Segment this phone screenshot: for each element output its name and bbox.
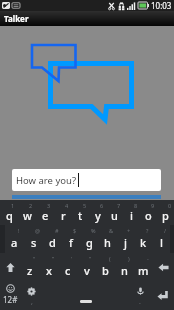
staticText: . [139, 297, 141, 307]
staticText: 12# [3, 294, 18, 305]
staticText: z [27, 263, 33, 278]
staticText: a [11, 235, 18, 250]
staticText: m [138, 263, 149, 278]
staticText: 7 [117, 202, 121, 209]
button[interactable]: ( [96, 253, 115, 281]
button[interactable]: 1 [0, 200, 18, 225]
staticText: 0 [168, 202, 172, 209]
staticText: b [102, 263, 109, 278]
button[interactable]: $ [62, 225, 80, 253]
staticText: , [31, 297, 33, 307]
button[interactable]: Emoji and symbols [0, 281, 21, 310]
button[interactable]: % [80, 225, 98, 253]
button[interactable]: 5 [72, 200, 89, 225]
staticText: & [109, 227, 114, 234]
staticText: v [84, 263, 90, 278]
staticText: n [121, 263, 128, 278]
button[interactable]: # [43, 225, 62, 253]
button[interactable]: ? [134, 225, 152, 253]
button[interactable]: 4 [54, 200, 72, 225]
button[interactable]: 9 [140, 200, 157, 225]
staticText: + [127, 227, 131, 234]
button[interactable]: “ [20, 253, 39, 281]
staticText: 8 [134, 202, 138, 209]
staticText: 3 [47, 202, 51, 209]
staticText: h [104, 235, 111, 250]
button[interactable]: / [152, 225, 170, 253]
staticText: ” [52, 255, 54, 262]
staticText: w [23, 208, 32, 223]
staticText: y [95, 208, 101, 223]
staticText: 4 [65, 202, 69, 209]
button[interactable]: 3 [36, 200, 54, 225]
staticText: x [46, 263, 52, 278]
staticText: k [140, 235, 147, 250]
staticText: % [91, 227, 96, 234]
staticText: $ [73, 227, 77, 234]
staticText: g [86, 235, 93, 250]
button[interactable]: Talker [0, 11, 174, 26]
button[interactable]: Shift [0, 253, 20, 281]
staticText: l [160, 235, 163, 250]
staticText: q [6, 208, 13, 223]
button[interactable]: Space [42, 281, 130, 310]
button[interactable]: How are you? [12, 169, 161, 191]
button[interactable]: Settings [21, 281, 42, 310]
staticText: o [145, 208, 152, 223]
staticText: “ [33, 255, 35, 262]
staticText: u [111, 208, 118, 223]
staticText: 9 [151, 202, 155, 209]
staticText: 10:03 [151, 0, 172, 11]
staticText: j [124, 235, 127, 250]
staticText: " [89, 255, 92, 262]
staticText: e [42, 208, 49, 223]
staticText: ( [109, 255, 111, 262]
button[interactable]: ) [115, 253, 134, 281]
staticText: 2 [29, 202, 33, 209]
button[interactable]: " [77, 253, 96, 281]
staticText: - [147, 255, 149, 262]
staticText: @ [35, 227, 40, 234]
button[interactable]: 2 [18, 200, 36, 225]
button[interactable]: @ [24, 225, 43, 253]
button[interactable]: ' [58, 253, 77, 281]
button[interactable]: ! [5, 225, 24, 253]
button[interactable]: Enter [150, 281, 174, 310]
staticText: How are you? [16, 174, 77, 187]
button[interactable]: 6 [89, 200, 106, 225]
staticText: p [162, 208, 169, 223]
button[interactable]: ” [39, 253, 58, 281]
staticText: ) [128, 255, 130, 262]
staticText: s [31, 235, 37, 250]
button[interactable]: - [134, 253, 153, 281]
staticText: f [69, 235, 73, 250]
staticText: c [65, 263, 71, 278]
staticText: ! [18, 227, 20, 234]
button[interactable]: Backspace [153, 253, 174, 281]
staticText: 6 [100, 202, 104, 209]
staticText: ? [146, 227, 149, 234]
button[interactable]: & [98, 225, 116, 253]
staticText: d [49, 235, 56, 250]
button[interactable]: + [116, 225, 134, 253]
staticText: i [130, 208, 133, 223]
staticText: ' [71, 255, 73, 262]
staticText: 1 [11, 202, 15, 209]
staticText: t [78, 208, 83, 223]
staticText: / [164, 227, 167, 234]
staticText: # [55, 227, 59, 234]
button[interactable]: 0 [157, 200, 174, 225]
staticText: 5 [83, 202, 87, 209]
button[interactable]: 7 [106, 200, 123, 225]
staticText: Talker [4, 13, 29, 24]
staticText: r [61, 208, 66, 223]
button[interactable]: Voice input [130, 281, 150, 310]
button[interactable]: 8 [123, 200, 140, 225]
